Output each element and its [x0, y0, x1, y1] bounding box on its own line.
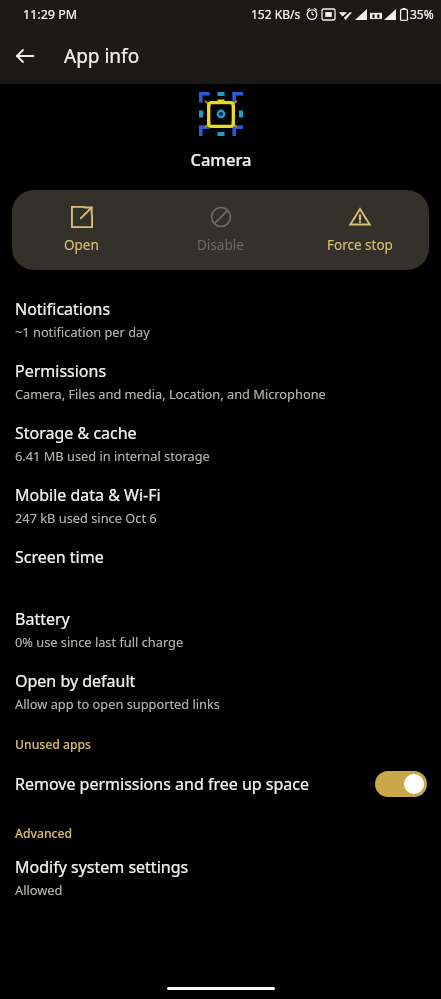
button[interactable]: Storage & cache: [0, 412, 441, 474]
staticText: 0% use since last full charge: [15, 633, 184, 650]
staticText: Battery: [15, 608, 70, 630]
staticText: 35%: [410, 6, 434, 22]
button[interactable]: Disable: [151, 198, 290, 262]
staticText: Disable: [197, 236, 244, 254]
button[interactable]: Mobile data & Wi-Fi: [0, 474, 441, 536]
staticText: Allowed: [15, 881, 63, 898]
staticText: Modify system settings: [15, 856, 189, 878]
staticText: Permissions: [15, 360, 107, 382]
staticText: Camera, Files and media, Location, and M…: [15, 385, 326, 402]
button[interactable]: Modify system settings: [0, 846, 441, 908]
button[interactable]: Back: [9, 40, 41, 72]
button[interactable]: Open: [12, 198, 151, 262]
staticText: Camera: [190, 148, 252, 170]
staticText: 247 kB used since Oct 6: [15, 509, 157, 526]
button[interactable]: Open by default: [0, 660, 441, 722]
staticText: 11:29 PM: [23, 6, 78, 23]
button[interactable]: Force stop: [290, 198, 429, 262]
button[interactable]: Remove permissions and free up space: [0, 757, 441, 811]
staticText: Unused apps: [15, 736, 91, 753]
button[interactable]: Battery: [0, 598, 441, 660]
staticText: Remove permissions and free up space: [15, 773, 375, 795]
staticText: Force stop: [327, 236, 393, 254]
staticText: ~1 notification per day: [15, 323, 150, 340]
staticText: 6.41 MB used in internal storage: [15, 447, 210, 464]
button[interactable]: Screen time: [0, 536, 441, 598]
staticText: Allow app to open supported links: [15, 695, 220, 712]
button[interactable]: Notifications: [0, 288, 441, 350]
staticText: App info: [64, 43, 140, 69]
button[interactable]: Permissions: [0, 350, 441, 412]
staticText: Advanced: [15, 825, 73, 842]
staticText: Storage & cache: [15, 422, 137, 444]
staticText: Notifications: [15, 298, 111, 320]
staticText: Open: [64, 236, 99, 254]
staticText: Open by default: [15, 670, 136, 692]
staticText: Screen time: [15, 546, 104, 568]
staticText: Mobile data & Wi-Fi: [15, 484, 161, 506]
staticText: 152 KB/s: [251, 6, 301, 22]
